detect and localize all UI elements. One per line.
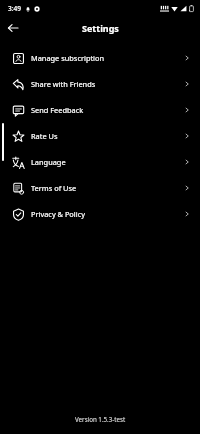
button[interactable]: Terms of Use: [0, 175, 200, 201]
staticText: Version 1.5.3-test: [75, 415, 126, 423]
button[interactable]: Language: [0, 149, 200, 175]
staticText: Rate Us: [31, 131, 58, 141]
staticText: Settings: [82, 22, 119, 34]
button[interactable]: Back: [4, 19, 22, 37]
button[interactable]: Send Feedback: [0, 97, 200, 123]
button[interactable]: Privacy & Policy: [0, 201, 200, 227]
staticText: Manage subscription: [31, 53, 105, 63]
staticText: Privacy & Policy: [31, 209, 85, 219]
button[interactable]: Share with Friends: [0, 71, 200, 97]
button[interactable]: Manage subscription: [0, 45, 200, 71]
button[interactable]: Rate Us: [0, 123, 200, 149]
staticText: Terms of Use: [31, 183, 77, 193]
staticText: 3:49: [8, 4, 21, 13]
staticText: Language: [31, 157, 66, 167]
staticText: Send Feedback: [31, 105, 84, 115]
staticText: Share with Friends: [31, 79, 96, 89]
